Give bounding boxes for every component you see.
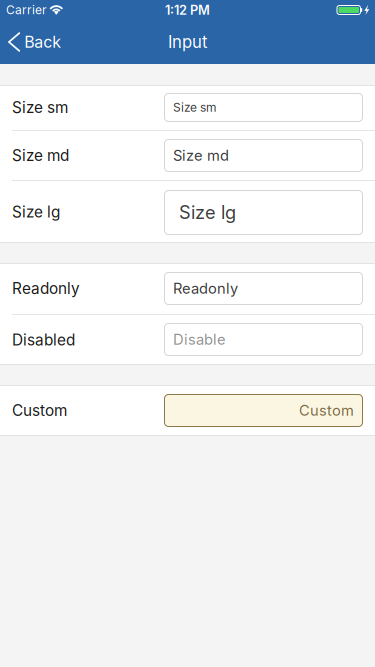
staticText: 1:12 PM	[165, 2, 210, 18]
staticText: Disable	[173, 331, 226, 348]
button[interactable]: Size lg	[0, 181, 375, 243]
button[interactable]: Size md	[0, 131, 375, 180]
staticText: Size md	[12, 146, 69, 165]
staticText: Size sm	[173, 100, 217, 115]
staticText: Readonly	[12, 279, 80, 298]
button[interactable]: Back	[0, 20, 71, 64]
button[interactable]: Custom	[0, 385, 375, 436]
staticText: Disabled	[12, 331, 75, 349]
staticText: Size lg	[179, 201, 236, 223]
staticText: Size md	[173, 147, 229, 164]
button[interactable]: Size sm	[0, 85, 375, 130]
staticText: Carrier	[6, 3, 47, 17]
staticText: Readonly	[173, 280, 238, 297]
staticText: Size lg	[12, 203, 60, 221]
button[interactable]: Disabled	[0, 315, 375, 365]
staticText: Custom	[12, 401, 67, 420]
button[interactable]: Readonly	[0, 263, 375, 314]
staticText: Custom	[299, 402, 354, 419]
staticText: Size sm	[12, 98, 68, 117]
staticText: Back	[24, 32, 61, 52]
staticText: Input	[168, 32, 207, 52]
